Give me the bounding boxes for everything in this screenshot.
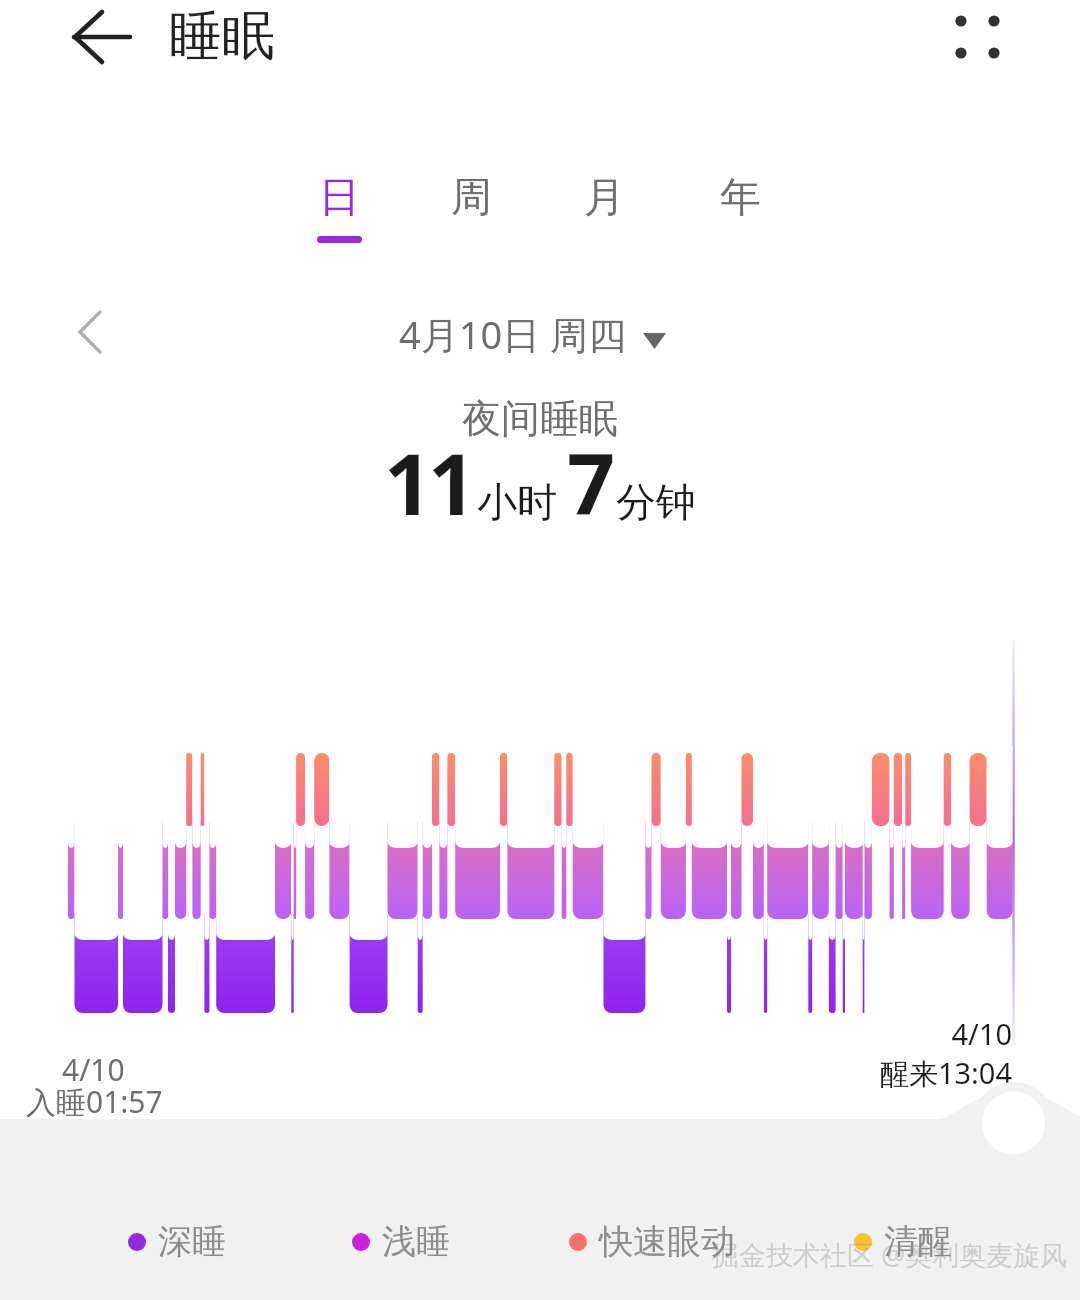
- staticText: 入睡01:57: [26, 1081, 163, 1122]
- button[interactable]: Back: [64, 6, 130, 68]
- staticText: 4/10: [62, 1049, 125, 1090]
- staticText: 醒来13:04: [879, 1053, 1012, 1093]
- staticText: 7: [567, 425, 612, 539]
- staticText: 11: [384, 425, 473, 539]
- staticText: 周: [451, 172, 492, 224]
- staticText: 快速眼动: [599, 1220, 735, 1263]
- staticText: 分钟: [616, 477, 696, 527]
- staticText: 清醒: [884, 1220, 952, 1263]
- staticText: 深睡: [158, 1220, 226, 1263]
- staticText: 日: [319, 172, 360, 224]
- staticText: 小时: [477, 477, 557, 527]
- staticText: 睡眠: [169, 3, 275, 70]
- button[interactable]: Add record: [982, 1091, 1045, 1154]
- staticText: 4/10: [951, 1014, 1012, 1053]
- button[interactable]: 清醒: [854, 1220, 952, 1263]
- button[interactable]: 深睡: [128, 1220, 226, 1263]
- button[interactable]: 快速眼动: [569, 1220, 735, 1263]
- button[interactable]: Previous day: [58, 302, 118, 362]
- staticText: 4月10日 周四: [399, 308, 627, 360]
- button[interactable]: More options: [936, 0, 1018, 74]
- button[interactable]: 年: [684, 172, 796, 264]
- staticText: 浅睡: [382, 1220, 450, 1263]
- staticText: 掘金技术社区 @奥利奥麦旋风: [712, 1236, 1068, 1273]
- staticText: 夜间睡眠: [462, 394, 618, 443]
- staticText: 年: [720, 172, 761, 224]
- button[interactable]: 浅睡: [352, 1220, 450, 1263]
- staticText: 月: [584, 172, 625, 224]
- button[interactable]: 日: [283, 172, 395, 264]
- button[interactable]: 4月10日 周四: [399, 308, 666, 360]
- button[interactable]: 月: [548, 172, 660, 264]
- button[interactable]: 周: [415, 172, 527, 264]
